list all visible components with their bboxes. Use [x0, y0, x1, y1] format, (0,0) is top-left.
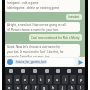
staticText: Alright, a new bot. How are we going to … [7, 23, 66, 27]
button[interactable]: r [30, 75, 36, 84]
staticText: o [72, 77, 75, 82]
button[interactable]: Keyboard tool [5, 67, 17, 75]
staticText: a [8, 85, 10, 90]
other: Emoji [7, 59, 13, 65]
staticText: t [40, 77, 42, 82]
staticText: your bot. It must end in 'bot'. Like thi… [7, 50, 64, 54]
button[interactable]: Keyboard tool [29, 67, 41, 75]
staticText: y [48, 77, 50, 82]
button[interactable]: j [59, 85, 66, 90]
button[interactable]: u [54, 75, 60, 84]
staticText: /setgame - edit a game [7, 1, 39, 5]
button[interactable]: Keyboard tool [17, 67, 29, 75]
button[interactable]: Emoji [6, 58, 75, 66]
staticText: l [80, 85, 81, 90]
staticText: w [16, 77, 19, 82]
staticText: e [24, 77, 26, 82]
button[interactable]: Keyboard tool [41, 67, 52, 75]
button[interactable]: t [38, 75, 44, 84]
staticText: p [80, 77, 83, 82]
button[interactable]: l [77, 85, 84, 90]
staticText: u [56, 77, 59, 82]
button[interactable]: Keyboard tool [74, 67, 85, 75]
staticText: d [25, 85, 28, 90]
button[interactable]: w [14, 75, 20, 84]
button[interactable]: e [22, 75, 28, 84]
button[interactable]: Alright, a new bot. How are we going to … [5, 22, 80, 32]
button[interactable]: i [62, 75, 68, 84]
button[interactable]: s [14, 85, 21, 90]
button[interactable]: Send [75, 57, 85, 67]
staticText: k [71, 85, 73, 90]
staticText: j [62, 85, 63, 90]
button[interactable]: k [68, 85, 75, 90]
staticText: s [17, 85, 19, 90]
staticText: Cool new notebook for Rick e Morty [31, 36, 80, 40]
staticText: i [65, 77, 66, 82]
button[interactable]: a [6, 85, 12, 90]
staticText: /deletegame - delete an existing game [7, 6, 60, 10]
button[interactable]: g [41, 85, 48, 90]
button[interactable]: f [32, 85, 39, 90]
button[interactable]: Keyboard tool [52, 67, 63, 75]
button[interactable]: q [6, 75, 12, 84]
staticText: house_for_guests_bot [16, 60, 46, 64]
button[interactable]: Keyboard tool [63, 67, 74, 75]
button[interactable]: p [78, 75, 84, 84]
button[interactable]: y [46, 75, 52, 84]
staticText: r [32, 77, 34, 82]
staticText: example: TetrisBot or tetris_bot. [7, 55, 51, 57]
staticText: g [43, 85, 46, 90]
staticText: f [35, 85, 37, 90]
staticText: Good. Now let's choose a username for [7, 45, 61, 49]
staticText: q [8, 77, 11, 82]
staticText: /newbot [68, 15, 80, 19]
button[interactable]: d [23, 85, 30, 90]
button[interactable]: /setgame - edit a game [5, 0, 80, 12]
staticText: it? Please choose a name for your bot. [7, 28, 59, 32]
button[interactable]: /newbot [66, 14, 82, 20]
button[interactable]: Cool new notebook for Rick e Morty [29, 34, 82, 41]
button[interactable]: o [70, 75, 76, 84]
button[interactable]: Good. Now let's choose a username for [5, 44, 80, 57]
staticText: h [52, 85, 55, 90]
button[interactable]: h [50, 85, 57, 90]
